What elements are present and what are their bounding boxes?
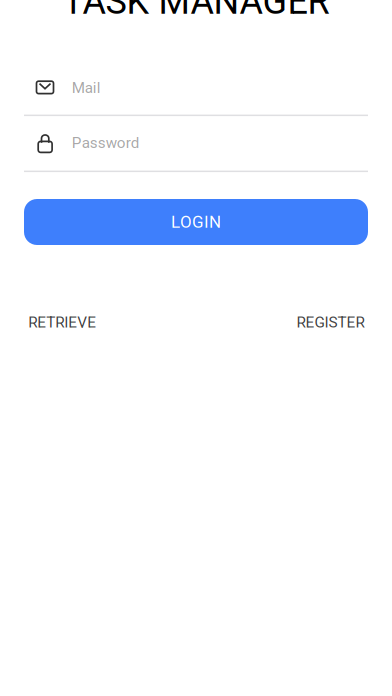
staticText: REGISTER [297,313,365,331]
button[interactable]: RETRIEVE [24,311,101,333]
staticText: LOGIN [171,212,221,232]
staticText: Password [72,134,140,152]
staticText: RETRIEVE [28,313,96,331]
button[interactable]: REGISTER [293,311,368,333]
staticText: TASK MANAGER [62,0,329,23]
staticText: Mail [72,79,101,97]
button[interactable]: LOGIN [24,199,368,245]
